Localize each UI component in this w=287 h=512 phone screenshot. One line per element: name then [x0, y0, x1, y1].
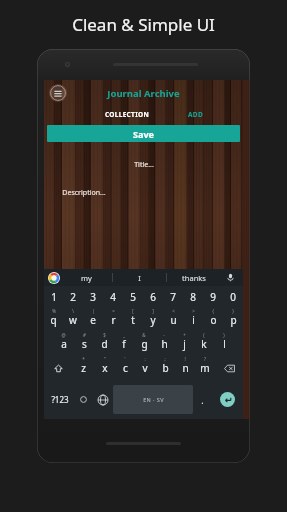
button[interactable]: 6: [143, 286, 163, 308]
button[interactable]: =: [103, 308, 123, 332]
staticText: h: [161, 337, 168, 351]
staticText: b: [162, 361, 169, 375]
button[interactable]: ]: [143, 308, 163, 332]
staticText: Title...: [134, 160, 154, 170]
button[interactable]: }: [223, 308, 243, 332]
staticText: p: [230, 313, 237, 327]
staticText: u: [170, 313, 177, 327]
staticText: thanks: [182, 273, 206, 283]
staticText: o: [210, 313, 217, 327]
button[interactable]: Menu: [49, 84, 67, 102]
button[interactable]: ': [115, 356, 135, 380]
staticText: @: [61, 332, 66, 338]
button[interactable]: -: [154, 332, 174, 356]
staticText: ?123: [51, 394, 69, 405]
staticText: t: [131, 313, 135, 327]
button[interactable]: 4: [103, 286, 123, 308]
button[interactable]: &: [134, 332, 154, 356]
button[interactable]: ): [214, 332, 234, 356]
button[interactable]: |: [83, 308, 103, 332]
button[interactable]: *: [73, 356, 94, 380]
button[interactable]: COLLECTION: [83, 106, 170, 123]
button[interactable]: 5: [123, 286, 143, 308]
button[interactable]: #: [74, 332, 94, 356]
button[interactable]: ": [94, 356, 115, 380]
staticText: ?: [204, 356, 206, 362]
staticText: ]: [152, 308, 154, 314]
button[interactable]: Enter: [220, 392, 235, 407]
button[interactable]: @: [53, 332, 74, 356]
button[interactable]: Shift: [44, 356, 73, 380]
staticText: *: [82, 356, 85, 362]
staticText: Description...: [62, 188, 106, 198]
staticText: 4: [110, 290, 116, 304]
button[interactable]: Space: [113, 385, 193, 414]
button[interactable]: my: [60, 269, 112, 286]
staticText: #: [83, 332, 86, 338]
staticText: _: [123, 332, 125, 338]
staticText: 2: [70, 290, 76, 304]
staticText: 8: [190, 290, 196, 304]
staticText: .: [201, 394, 204, 406]
staticText: ': [124, 356, 126, 362]
button[interactable]: Save: [47, 125, 240, 142]
button[interactable]: Backspace: [215, 356, 243, 380]
button[interactable]: Emoji: [75, 380, 92, 419]
button[interactable]: +: [174, 332, 194, 356]
button[interactable]: Google: [48, 272, 60, 284]
button[interactable]: _: [114, 332, 134, 356]
staticText: c: [123, 361, 128, 375]
button[interactable]: ;: [155, 356, 175, 380]
button[interactable]: 0: [223, 286, 243, 308]
staticText: i: [192, 313, 195, 327]
button[interactable]: \: [63, 308, 83, 332]
button[interactable]: Voice input: [220, 269, 240, 286]
button[interactable]: >: [183, 308, 203, 332]
button[interactable]: thanks: [167, 269, 220, 286]
staticText: ": [104, 356, 106, 362]
button[interactable]: 2: [63, 286, 83, 308]
button[interactable]: Change language: [92, 380, 113, 419]
button[interactable]: (: [194, 332, 214, 356]
staticText: 0: [230, 290, 236, 304]
button[interactable]: ?: [195, 356, 215, 380]
button[interactable]: $: [94, 332, 114, 356]
button[interactable]: 3: [83, 286, 103, 308]
staticText: >: [192, 308, 195, 314]
staticText: m: [200, 361, 210, 375]
button[interactable]: 7: [163, 286, 183, 308]
staticText: v: [142, 361, 148, 375]
button[interactable]: ADD: [170, 106, 221, 123]
staticText: 1: [51, 290, 57, 304]
staticText: COLLECTION: [105, 110, 149, 119]
staticText: :: [144, 356, 146, 362]
button[interactable]: {: [203, 308, 223, 332]
button[interactable]: ?123: [44, 380, 75, 419]
staticText: &: [142, 332, 146, 338]
staticText: -: [163, 332, 165, 338]
button[interactable]: !: [175, 356, 195, 380]
staticText: s: [82, 337, 87, 351]
button[interactable]: <: [163, 308, 183, 332]
button[interactable]: 1: [44, 286, 63, 308]
button[interactable]: %: [44, 308, 63, 332]
staticText: ): [223, 332, 225, 338]
button[interactable]: I: [113, 269, 166, 286]
staticText: (: [203, 332, 205, 338]
staticText: q: [50, 313, 57, 327]
staticText: I: [138, 273, 141, 283]
staticText: k: [201, 337, 207, 351]
button[interactable]: 8: [183, 286, 203, 308]
staticText: Clean & Simple UI: [72, 13, 215, 36]
staticText: %: [52, 308, 56, 314]
staticText: $: [103, 332, 106, 338]
staticText: =: [112, 308, 115, 314]
button[interactable]: .: [193, 380, 212, 419]
staticText: f: [122, 337, 126, 351]
button[interactable]: [: [123, 308, 143, 332]
button[interactable]: 9: [203, 286, 223, 308]
button[interactable]: :: [135, 356, 155, 380]
staticText: 5: [130, 290, 136, 304]
staticText: Journal Archive: [107, 87, 180, 100]
staticText: 6: [150, 290, 156, 304]
